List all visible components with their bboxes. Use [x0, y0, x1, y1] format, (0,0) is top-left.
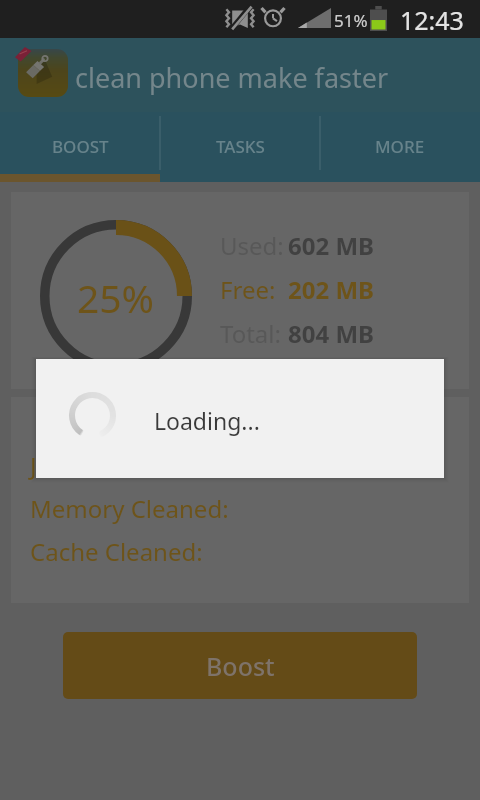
button[interactable]: MORE	[320, 112, 480, 174]
staticText: 12:43	[400, 3, 464, 37]
staticText: BOOST	[52, 135, 109, 158]
staticText: 602 MB	[288, 229, 375, 262]
staticText: clean phone make faster	[75, 59, 389, 96]
staticText: Loading...	[154, 405, 260, 436]
staticText: Total:	[220, 317, 281, 350]
staticText: Boost	[206, 649, 275, 683]
staticText: TASKS	[216, 135, 265, 158]
staticText: Used:	[220, 229, 284, 262]
staticText: 202 MB	[288, 273, 375, 306]
button[interactable]: TASKS	[160, 112, 320, 174]
staticText: Cache Cleaned:	[30, 535, 203, 568]
staticText: Memory Cleaned:	[30, 492, 229, 525]
button[interactable]: BOOST	[0, 112, 160, 174]
button[interactable]: Boost	[63, 632, 417, 699]
staticText: 804 MB	[288, 317, 375, 350]
staticText: MORE	[375, 135, 425, 158]
staticText: 51%	[334, 9, 368, 32]
staticText: Free:	[220, 273, 276, 306]
staticText: 25%	[77, 271, 155, 324]
staticText: Junk Cleaned:	[30, 449, 184, 482]
